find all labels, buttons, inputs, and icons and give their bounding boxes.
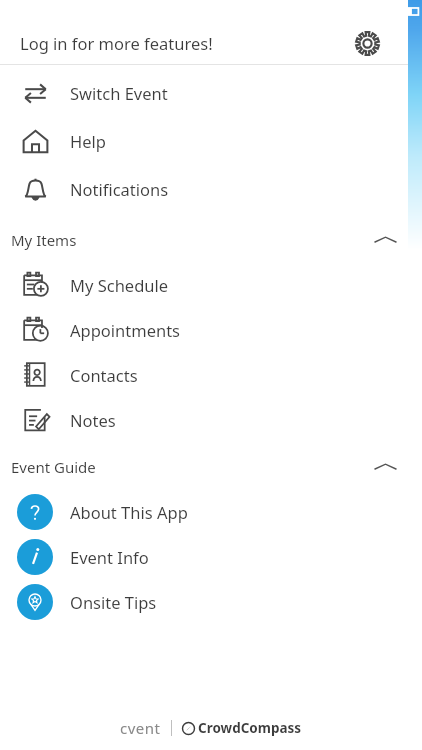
button[interactable]: Event Guide bbox=[0, 444, 422, 489]
button[interactable]: My Schedule bbox=[0, 262, 422, 307]
staticText: Event Guide bbox=[11, 457, 96, 477]
button[interactable]: Notes bbox=[0, 397, 422, 442]
button[interactable]: Help bbox=[0, 117, 422, 165]
button[interactable]: Notifications bbox=[0, 165, 422, 213]
staticText: Log in for more features! bbox=[20, 32, 213, 54]
staticText: Notifications bbox=[70, 178, 169, 200]
staticText: About This App bbox=[70, 501, 188, 523]
staticText: My Schedule bbox=[70, 274, 169, 296]
button[interactable]: My Items bbox=[0, 217, 422, 262]
staticText: Onsite Tips bbox=[70, 591, 157, 613]
button[interactable]: Contacts bbox=[0, 352, 422, 397]
button[interactable]: Appointments bbox=[0, 307, 422, 352]
staticText: My Items bbox=[11, 230, 77, 250]
staticText: Event Info bbox=[70, 546, 149, 568]
button[interactable]: Onsite Tips bbox=[0, 579, 422, 624]
staticText: cvent bbox=[120, 718, 161, 738]
staticText: Switch Event bbox=[70, 82, 168, 104]
button[interactable]: Log in for more features! bbox=[0, 22, 422, 64]
staticText: Contacts bbox=[70, 364, 138, 386]
staticText: CrowdCompass bbox=[198, 719, 302, 737]
staticText: Help bbox=[70, 130, 106, 152]
button[interactable]: Settings bbox=[350, 26, 384, 60]
button[interactable]: Switch Event bbox=[0, 69, 422, 117]
staticText: Appointments bbox=[70, 319, 181, 341]
button[interactable]: About This App bbox=[0, 489, 422, 534]
staticText: Notes bbox=[70, 409, 116, 431]
button[interactable]: Event Info bbox=[0, 534, 422, 579]
